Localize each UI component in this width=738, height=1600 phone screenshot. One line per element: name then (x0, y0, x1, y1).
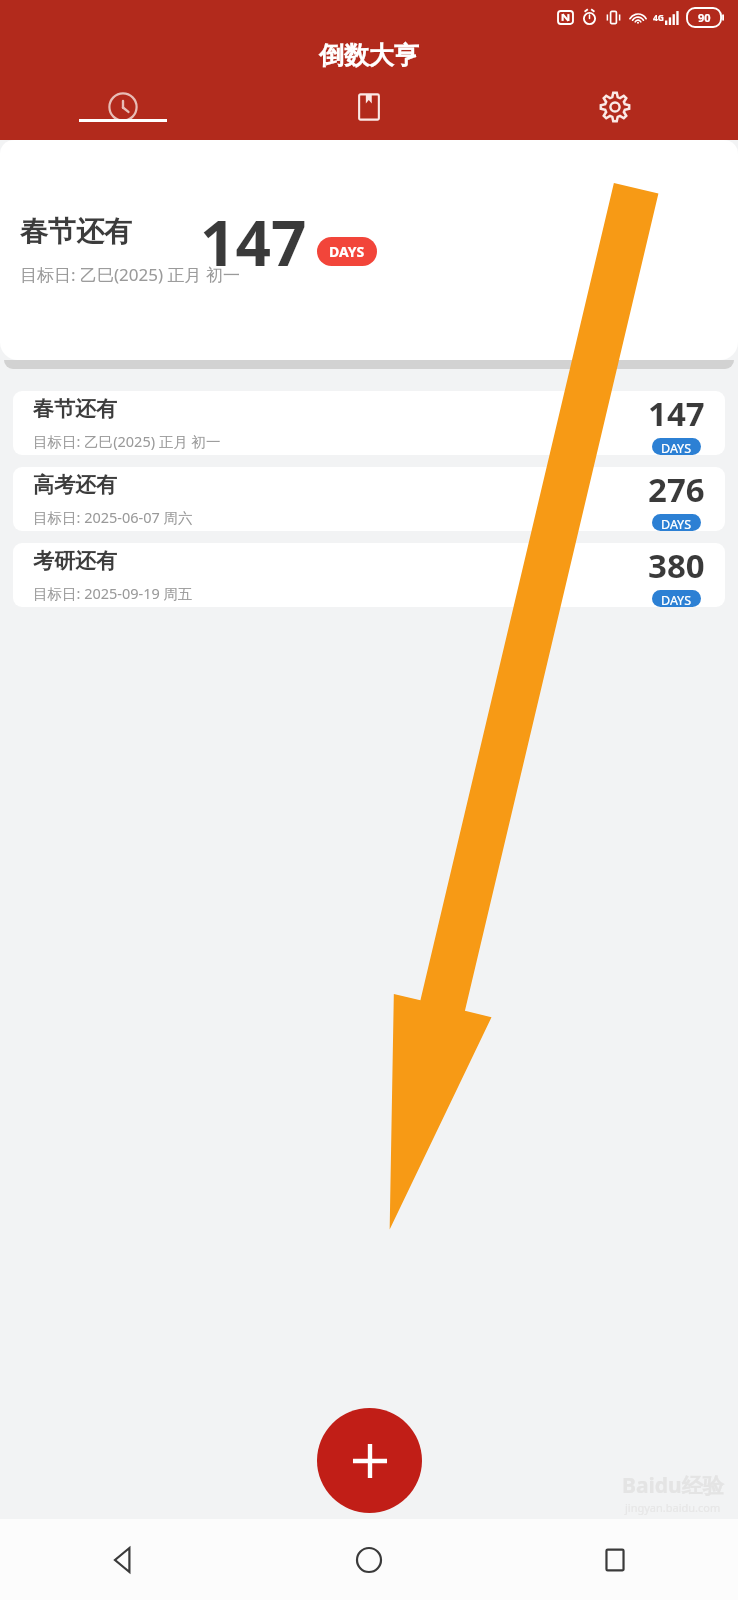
button[interactable]: Saved list tab (246, 88, 492, 122)
staticText: DAYS (661, 516, 692, 529)
button[interactable]: 高考还有 (13, 467, 725, 531)
staticText: 目标日: 乙巳(2025) 正月 初一 (20, 263, 240, 286)
staticText: Baidu经验 (622, 1471, 724, 1500)
button[interactable]: 春节还有 (0, 140, 738, 360)
button[interactable]: Add countdown (317, 1408, 422, 1513)
staticText: 目标日: 乙巳(2025) 正月 初一 (33, 431, 221, 451)
button[interactable]: Home (246, 1519, 492, 1600)
button[interactable]: 考研还有 (13, 543, 725, 607)
staticText: 春节还有 (20, 214, 132, 249)
staticText: DAYS (329, 242, 365, 261)
staticText: DAYS (661, 440, 692, 453)
staticText: 倒数大亨 (319, 40, 419, 71)
staticText: 高考还有 (33, 472, 117, 498)
staticText: DAYS (661, 592, 692, 605)
button[interactable]: Settings tab (492, 88, 738, 122)
button[interactable]: Countdown timer tab (0, 88, 246, 122)
staticText: 春节还有 (33, 396, 117, 422)
staticText: 目标日: 2025-06-07 周六 (33, 507, 193, 527)
staticText: jingyan.baidu.com (625, 1500, 721, 1515)
staticText: 4G (653, 12, 665, 24)
staticText: 147 (648, 391, 705, 436)
staticText: 目标日: 2025-09-19 周五 (33, 583, 193, 603)
button[interactable]: Back (0, 1519, 246, 1600)
button[interactable]: 春节还有 (13, 391, 725, 455)
staticText: 90 (698, 10, 711, 25)
button[interactable]: Recent apps (492, 1519, 738, 1600)
staticText: 147 (200, 200, 307, 284)
staticText: 考研还有 (33, 548, 117, 574)
staticText: 380 (648, 543, 705, 588)
staticText: 276 (648, 467, 705, 512)
